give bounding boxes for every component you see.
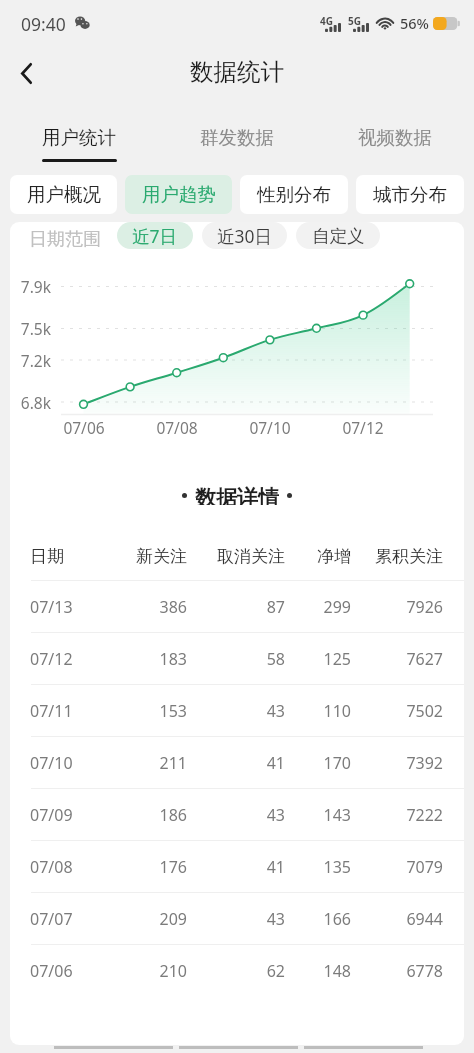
staticText: 43 <box>195 908 285 930</box>
staticText: 186 <box>97 804 187 826</box>
staticText: 166 <box>261 908 351 930</box>
staticText: 210 <box>97 960 187 982</box>
staticText: 87 <box>195 596 285 618</box>
staticText: 近7日 <box>132 224 178 248</box>
staticText: 148 <box>261 960 351 982</box>
staticText: 299 <box>261 596 351 618</box>
staticText: 7392 <box>353 752 443 774</box>
staticText: 07/10 <box>240 417 300 438</box>
staticText: 7222 <box>353 804 443 826</box>
button[interactable]: 07/12 <box>10 633 464 684</box>
staticText: 用户统计 <box>42 126 116 149</box>
staticText: 性别分布 <box>257 183 331 206</box>
staticText: 183 <box>97 648 187 670</box>
staticText: 07/09 <box>30 804 73 826</box>
button[interactable]: 群发数据 <box>158 100 316 165</box>
staticText: 176 <box>97 856 187 878</box>
staticText: 城市分布 <box>373 183 447 206</box>
staticText: 数据统计 <box>190 57 284 87</box>
staticText: 09:40 <box>21 12 66 36</box>
button[interactable]: 自定义 <box>296 222 380 249</box>
staticText: 07/12 <box>333 417 393 438</box>
staticText: 56% <box>400 13 429 33</box>
staticText: 7.9k <box>10 276 51 297</box>
staticText: 用户趋势 <box>142 183 216 206</box>
staticText: 41 <box>195 856 285 878</box>
staticText: 135 <box>261 856 351 878</box>
staticText: 43 <box>195 804 285 826</box>
staticText: 7502 <box>353 700 443 722</box>
staticText: 07/06 <box>54 417 114 438</box>
staticText: 用户概况 <box>27 183 101 206</box>
staticText: 386 <box>97 596 187 618</box>
staticText: 07/10 <box>30 752 73 774</box>
button[interactable]: 性别分布 <box>240 175 348 214</box>
button[interactable]: 城市分布 <box>356 175 464 214</box>
staticText: 211 <box>97 752 187 774</box>
staticText: 110 <box>261 700 351 722</box>
staticText: 7.5k <box>10 318 51 339</box>
button[interactable]: 用户概况 <box>10 175 117 214</box>
staticText: 7079 <box>353 856 443 878</box>
staticText: 净增 <box>261 546 351 567</box>
button[interactable]: 近30日 <box>202 222 287 249</box>
button[interactable]: 视频数据 <box>316 100 474 165</box>
staticText: 07/13 <box>30 596 73 618</box>
staticText: 6778 <box>353 960 443 982</box>
staticText: 62 <box>195 960 285 982</box>
button[interactable]: 07/07 <box>10 893 464 944</box>
button[interactable]: 07/13 <box>10 581 464 632</box>
button[interactable]: 07/06 <box>10 945 464 996</box>
button[interactable]: 07/10 <box>10 737 464 788</box>
button[interactable]: 近7日 <box>117 222 193 249</box>
staticText: 新关注 <box>97 546 187 567</box>
staticText: 4G <box>320 14 333 28</box>
staticText: 153 <box>97 700 187 722</box>
staticText: 7627 <box>353 648 443 670</box>
staticText: 170 <box>261 752 351 774</box>
staticText: 58 <box>195 648 285 670</box>
staticText: 数据详情 <box>195 485 279 505</box>
staticText: 近30日 <box>217 224 273 248</box>
staticText: 日期范围 <box>29 228 101 251</box>
staticText: 7.2k <box>10 350 51 371</box>
staticText: 143 <box>261 804 351 826</box>
staticText: 自定义 <box>312 225 365 247</box>
button[interactable]: 07/09 <box>10 789 464 840</box>
staticText: 43 <box>195 700 285 722</box>
staticText: 5G <box>348 14 361 28</box>
staticText: 6.8k <box>10 392 51 413</box>
button[interactable]: 用户趋势 <box>125 175 232 214</box>
staticText: 视频数据 <box>358 126 432 149</box>
staticText: 07/08 <box>30 856 73 878</box>
staticText: 07/07 <box>30 908 73 930</box>
staticText: 07/12 <box>30 648 73 670</box>
button[interactable]: 07/08 <box>10 841 464 892</box>
staticText: 日期 <box>30 546 64 567</box>
staticText: 7926 <box>353 596 443 618</box>
button[interactable]: 07/11 <box>10 685 464 736</box>
button[interactable]: 日期 <box>10 533 464 580</box>
button[interactable]: Back <box>2 49 50 97</box>
staticText: 取消关注 <box>195 546 285 567</box>
staticText: 6944 <box>353 908 443 930</box>
staticText: 125 <box>261 648 351 670</box>
staticText: 07/06 <box>30 960 73 982</box>
staticText: 209 <box>97 908 187 930</box>
staticText: 累积关注 <box>353 546 443 567</box>
button[interactable]: 用户统计 <box>0 100 158 165</box>
staticText: 07/08 <box>147 417 207 438</box>
staticText: 41 <box>195 752 285 774</box>
staticText: 群发数据 <box>200 126 274 149</box>
staticText: 07/11 <box>30 700 73 722</box>
